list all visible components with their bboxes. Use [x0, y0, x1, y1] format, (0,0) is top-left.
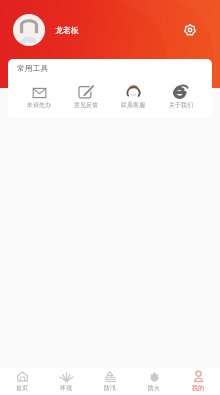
button[interactable]: 意见反馈: [62, 84, 109, 109]
button[interactable]: 未诉先办: [15, 84, 62, 109]
staticText: 防汛: [104, 384, 116, 392]
button[interactable]: 环境: [44, 368, 88, 395]
button[interactable]: 防火: [132, 368, 176, 395]
staticText: 意见反馈: [74, 101, 98, 109]
button[interactable]: 关于我们: [157, 84, 205, 109]
staticText: 首页: [16, 384, 28, 392]
button[interactable]: 联系客服: [109, 84, 157, 109]
button[interactable]: 我的: [176, 368, 220, 395]
staticText: 龙老板: [55, 25, 79, 35]
button[interactable]: 防汛: [88, 368, 132, 395]
staticText: 环境: [60, 384, 72, 392]
button[interactable]: Settings: [180, 20, 200, 40]
button[interactable]: 首页: [0, 368, 44, 395]
staticText: 未诉先办: [27, 101, 51, 109]
staticText: 关于我们: [169, 101, 193, 109]
button[interactable]: Avatar: [13, 14, 45, 46]
staticText: 我的: [192, 384, 204, 392]
staticText: 防火: [148, 384, 160, 392]
staticText: 联系客服: [121, 101, 145, 109]
staticText: 常用工具: [17, 63, 49, 73]
